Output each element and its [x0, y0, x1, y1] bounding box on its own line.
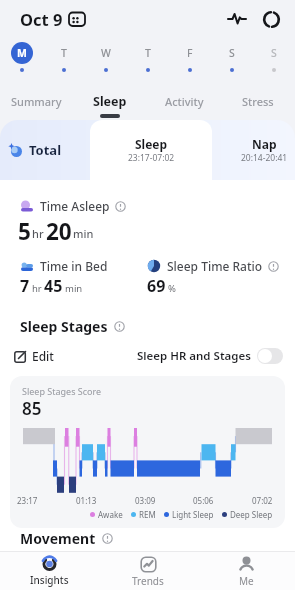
button[interactable]: Total	[0, 120, 90, 180]
staticText: hr	[32, 226, 44, 241]
staticText: min	[73, 226, 94, 241]
staticText: 20	[46, 216, 72, 244]
button[interactable]: Me	[197, 552, 295, 590]
staticText: Sleep Time Ratio	[167, 258, 263, 274]
staticText: Sleep Stages	[20, 317, 108, 336]
staticText: T	[61, 46, 67, 60]
staticText: M	[17, 46, 27, 60]
staticText: 23:17	[17, 495, 38, 506]
staticText: 69	[147, 275, 166, 297]
staticText: 07:02	[252, 495, 273, 506]
button[interactable]: F	[169, 38, 211, 82]
staticText: Light Sleep	[172, 509, 214, 520]
button[interactable]	[257, 348, 283, 364]
staticText: Summary	[11, 94, 62, 109]
staticText: Edit	[32, 348, 54, 364]
button[interactable]: Trends	[99, 552, 197, 590]
staticText: Sleep HR and Stages	[137, 348, 251, 364]
staticText: Me	[239, 574, 254, 588]
staticText: 05:06	[193, 495, 214, 506]
button[interactable]: Edit	[14, 348, 54, 364]
staticText: Sleep	[93, 93, 127, 110]
staticText: Time in Bed	[40, 258, 108, 274]
staticText: T	[145, 46, 151, 60]
button[interactable]: Sleep Stages Score	[10, 376, 285, 528]
staticText: S	[229, 46, 235, 60]
staticText: %	[168, 282, 176, 295]
button[interactable]: T	[127, 38, 169, 82]
staticText: Trends	[132, 574, 164, 588]
button[interactable]: Summary	[0, 82, 73, 120]
button[interactable]: M	[0, 38, 43, 82]
staticText: S	[271, 46, 277, 60]
staticText: 7	[20, 275, 30, 297]
button[interactable]	[227, 9, 247, 29]
staticText: Activity	[165, 94, 204, 109]
staticText: Awake	[98, 509, 123, 520]
staticText: 23:17-07:02	[128, 152, 175, 164]
staticText: hr	[32, 282, 42, 295]
button[interactable]: Nap	[234, 120, 295, 180]
staticText: Sleep Stages Score	[22, 385, 102, 397]
staticText: Movement	[20, 529, 96, 548]
staticText: W	[101, 46, 111, 60]
staticText: Sleep	[135, 136, 168, 152]
staticText: F	[187, 46, 193, 60]
button[interactable]: S	[253, 38, 295, 82]
button[interactable]: Sleep	[90, 120, 212, 180]
button[interactable]	[262, 10, 281, 29]
staticText: min	[65, 282, 83, 295]
staticText: Insights	[30, 573, 69, 587]
staticText: REM	[139, 509, 156, 520]
button[interactable]: S	[211, 38, 253, 82]
button[interactable]: Activity	[147, 82, 221, 120]
button[interactable]: T	[43, 38, 85, 82]
button[interactable]: W	[85, 38, 127, 82]
staticText: Oct 9	[20, 8, 63, 30]
staticText: 20:14-20:41	[241, 152, 288, 164]
staticText: 5	[18, 216, 31, 244]
button[interactable]: Stress	[221, 82, 295, 120]
button[interactable]: Insights	[0, 552, 99, 590]
staticText: 01:13	[76, 495, 97, 506]
staticText: Time Asleep	[40, 198, 110, 214]
staticText: Nap	[252, 136, 277, 152]
staticText: 85	[22, 397, 42, 420]
staticText: 03:09	[135, 495, 156, 506]
staticText: Total	[29, 141, 62, 159]
staticText: Deep Sleep	[230, 509, 273, 520]
button[interactable]: Sleep	[73, 82, 147, 120]
staticText: Stress	[242, 94, 274, 109]
staticText: 45	[44, 275, 63, 297]
button[interactable]: Oct 9	[20, 8, 86, 30]
